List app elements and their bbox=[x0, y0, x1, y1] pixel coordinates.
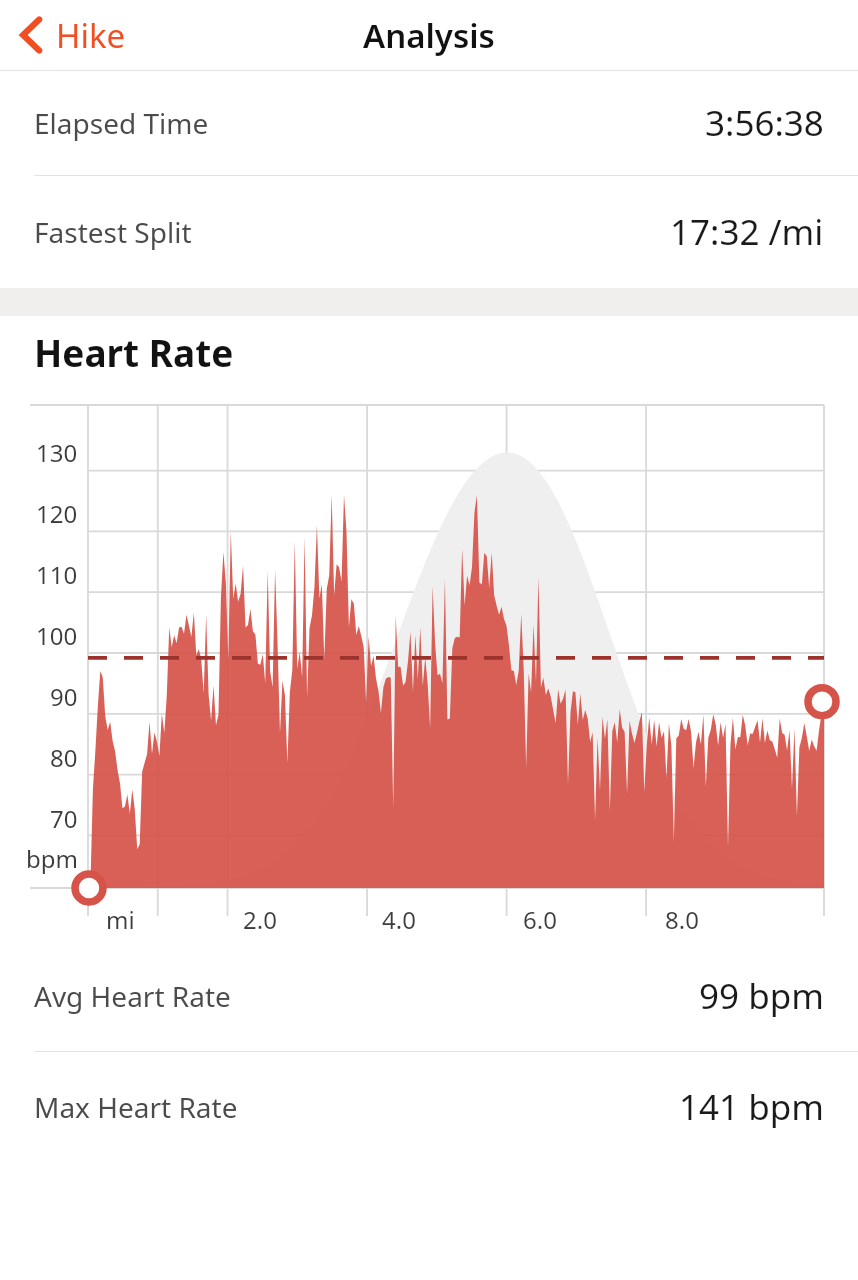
staticText: mi bbox=[106, 903, 135, 936]
staticText: 100 bbox=[36, 619, 78, 652]
staticText: 2.0 bbox=[243, 903, 277, 936]
staticText: 130 bbox=[36, 436, 78, 469]
staticText: 70 bbox=[50, 802, 78, 835]
button[interactable]: Max Heart Rate bbox=[0, 1052, 858, 1162]
staticText: bpm bbox=[26, 842, 78, 875]
staticText: 80 bbox=[50, 741, 78, 774]
staticText: Max Heart Rate bbox=[34, 1088, 238, 1126]
other: Back bbox=[20, 17, 44, 53]
staticText: 99 bpm bbox=[699, 972, 824, 1020]
staticText: 120 bbox=[36, 497, 78, 530]
button[interactable]: Elapsed Time bbox=[0, 71, 858, 175]
staticText: 4.0 bbox=[382, 903, 416, 936]
staticText: 141 bpm bbox=[679, 1083, 824, 1131]
button[interactable]: Fastest Split bbox=[0, 176, 858, 288]
staticText: 3:56:38 bbox=[705, 99, 824, 147]
staticText: Avg Heart Rate bbox=[34, 977, 231, 1015]
staticText: 6.0 bbox=[523, 903, 557, 936]
staticText: 17:32 /mi bbox=[670, 208, 824, 256]
button[interactable]: Back bbox=[0, 0, 144, 70]
staticText: 90 bbox=[50, 680, 78, 713]
staticText: Heart Rate bbox=[34, 327, 234, 377]
button[interactable]: Avg Heart Rate bbox=[0, 941, 858, 1051]
staticText: Fastest Split bbox=[34, 213, 192, 251]
staticText: 110 bbox=[36, 558, 78, 591]
other: Heart rate chart bbox=[0, 388, 858, 941]
staticText: Analysis bbox=[363, 13, 495, 58]
staticText: Elapsed Time bbox=[34, 104, 209, 142]
staticText: 8.0 bbox=[665, 903, 699, 936]
staticText: Hike bbox=[56, 13, 126, 58]
